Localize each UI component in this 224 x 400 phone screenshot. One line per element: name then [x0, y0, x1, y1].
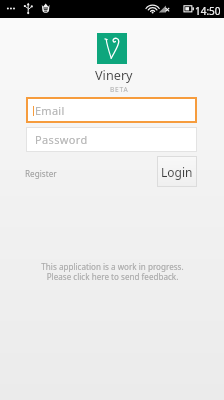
staticText: BETA: [110, 85, 129, 94]
staticText: Register: [25, 168, 57, 179]
other: Vinery logo: [97, 33, 127, 64]
button[interactable]: This application is a work in progress. …: [0, 261, 224, 282]
staticText: 14:50: [195, 4, 221, 18]
staticText: Login: [161, 164, 193, 180]
button[interactable]: Email: [26, 97, 197, 123]
button[interactable]: Register: [22, 165, 60, 182]
staticText: Email: [35, 103, 65, 118]
staticText: Vinery: [95, 66, 133, 83]
staticText: This application is a work in progress. …: [41, 261, 184, 282]
button[interactable]: Login: [157, 156, 197, 187]
staticText: Password: [35, 132, 88, 147]
button[interactable]: Password: [26, 127, 197, 152]
